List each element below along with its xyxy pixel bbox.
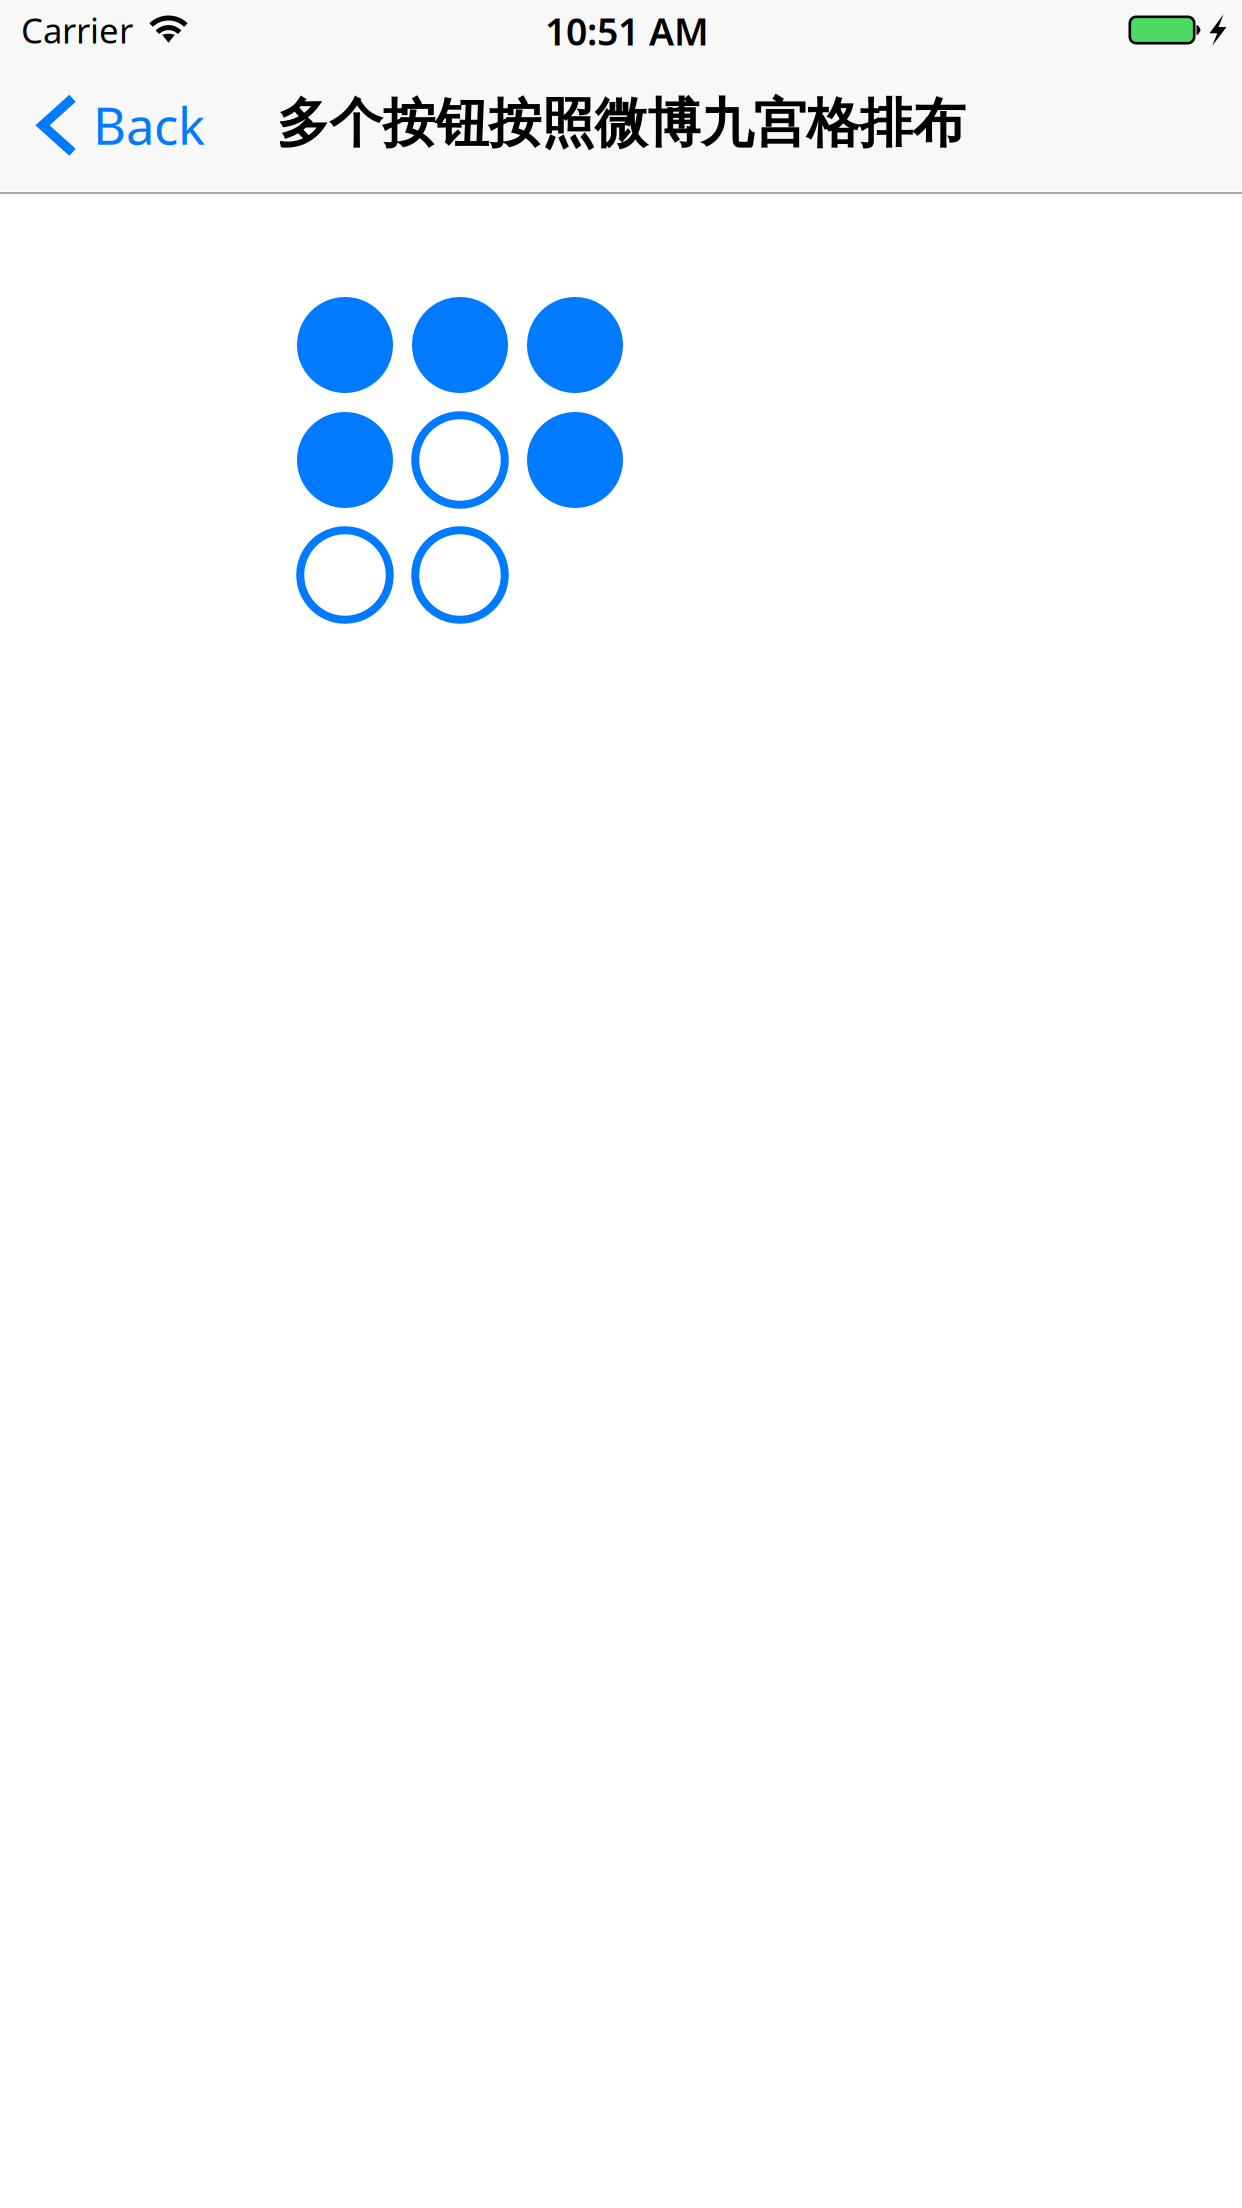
- button[interactable]: Option: [412, 412, 508, 508]
- button[interactable]: Selected option: [527, 412, 623, 508]
- button[interactable]: Selected option: [297, 297, 393, 393]
- staticText: Carrier: [21, 6, 133, 54]
- staticText: 多个按钮按照微博九宫格排布: [276, 90, 965, 157]
- staticText: 10:51 AM: [545, 6, 709, 56]
- button[interactable]: Option: [412, 527, 508, 623]
- button[interactable]: Option: [297, 527, 393, 623]
- staticText: Back: [93, 90, 205, 159]
- button[interactable]: Selected option: [412, 297, 508, 393]
- button[interactable]: Back: [0, 60, 225, 190]
- button[interactable]: Selected option: [527, 297, 623, 393]
- button[interactable]: Selected option: [297, 412, 393, 508]
